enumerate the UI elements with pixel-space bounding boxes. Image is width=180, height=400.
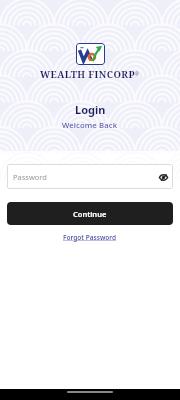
staticText: WEALTH FINCORP®: [40, 68, 140, 81]
staticText: Password: [13, 172, 47, 182]
button[interactable]: Password: [7, 164, 173, 189]
staticText: Login: [75, 102, 106, 117]
button[interactable]: Continue: [7, 202, 173, 225]
staticText: Continue: [73, 209, 107, 219]
button[interactable]: Show password: [156, 170, 170, 184]
staticText: Welcome Back: [62, 120, 118, 131]
button[interactable]: Forgot Password: [61, 231, 119, 244]
